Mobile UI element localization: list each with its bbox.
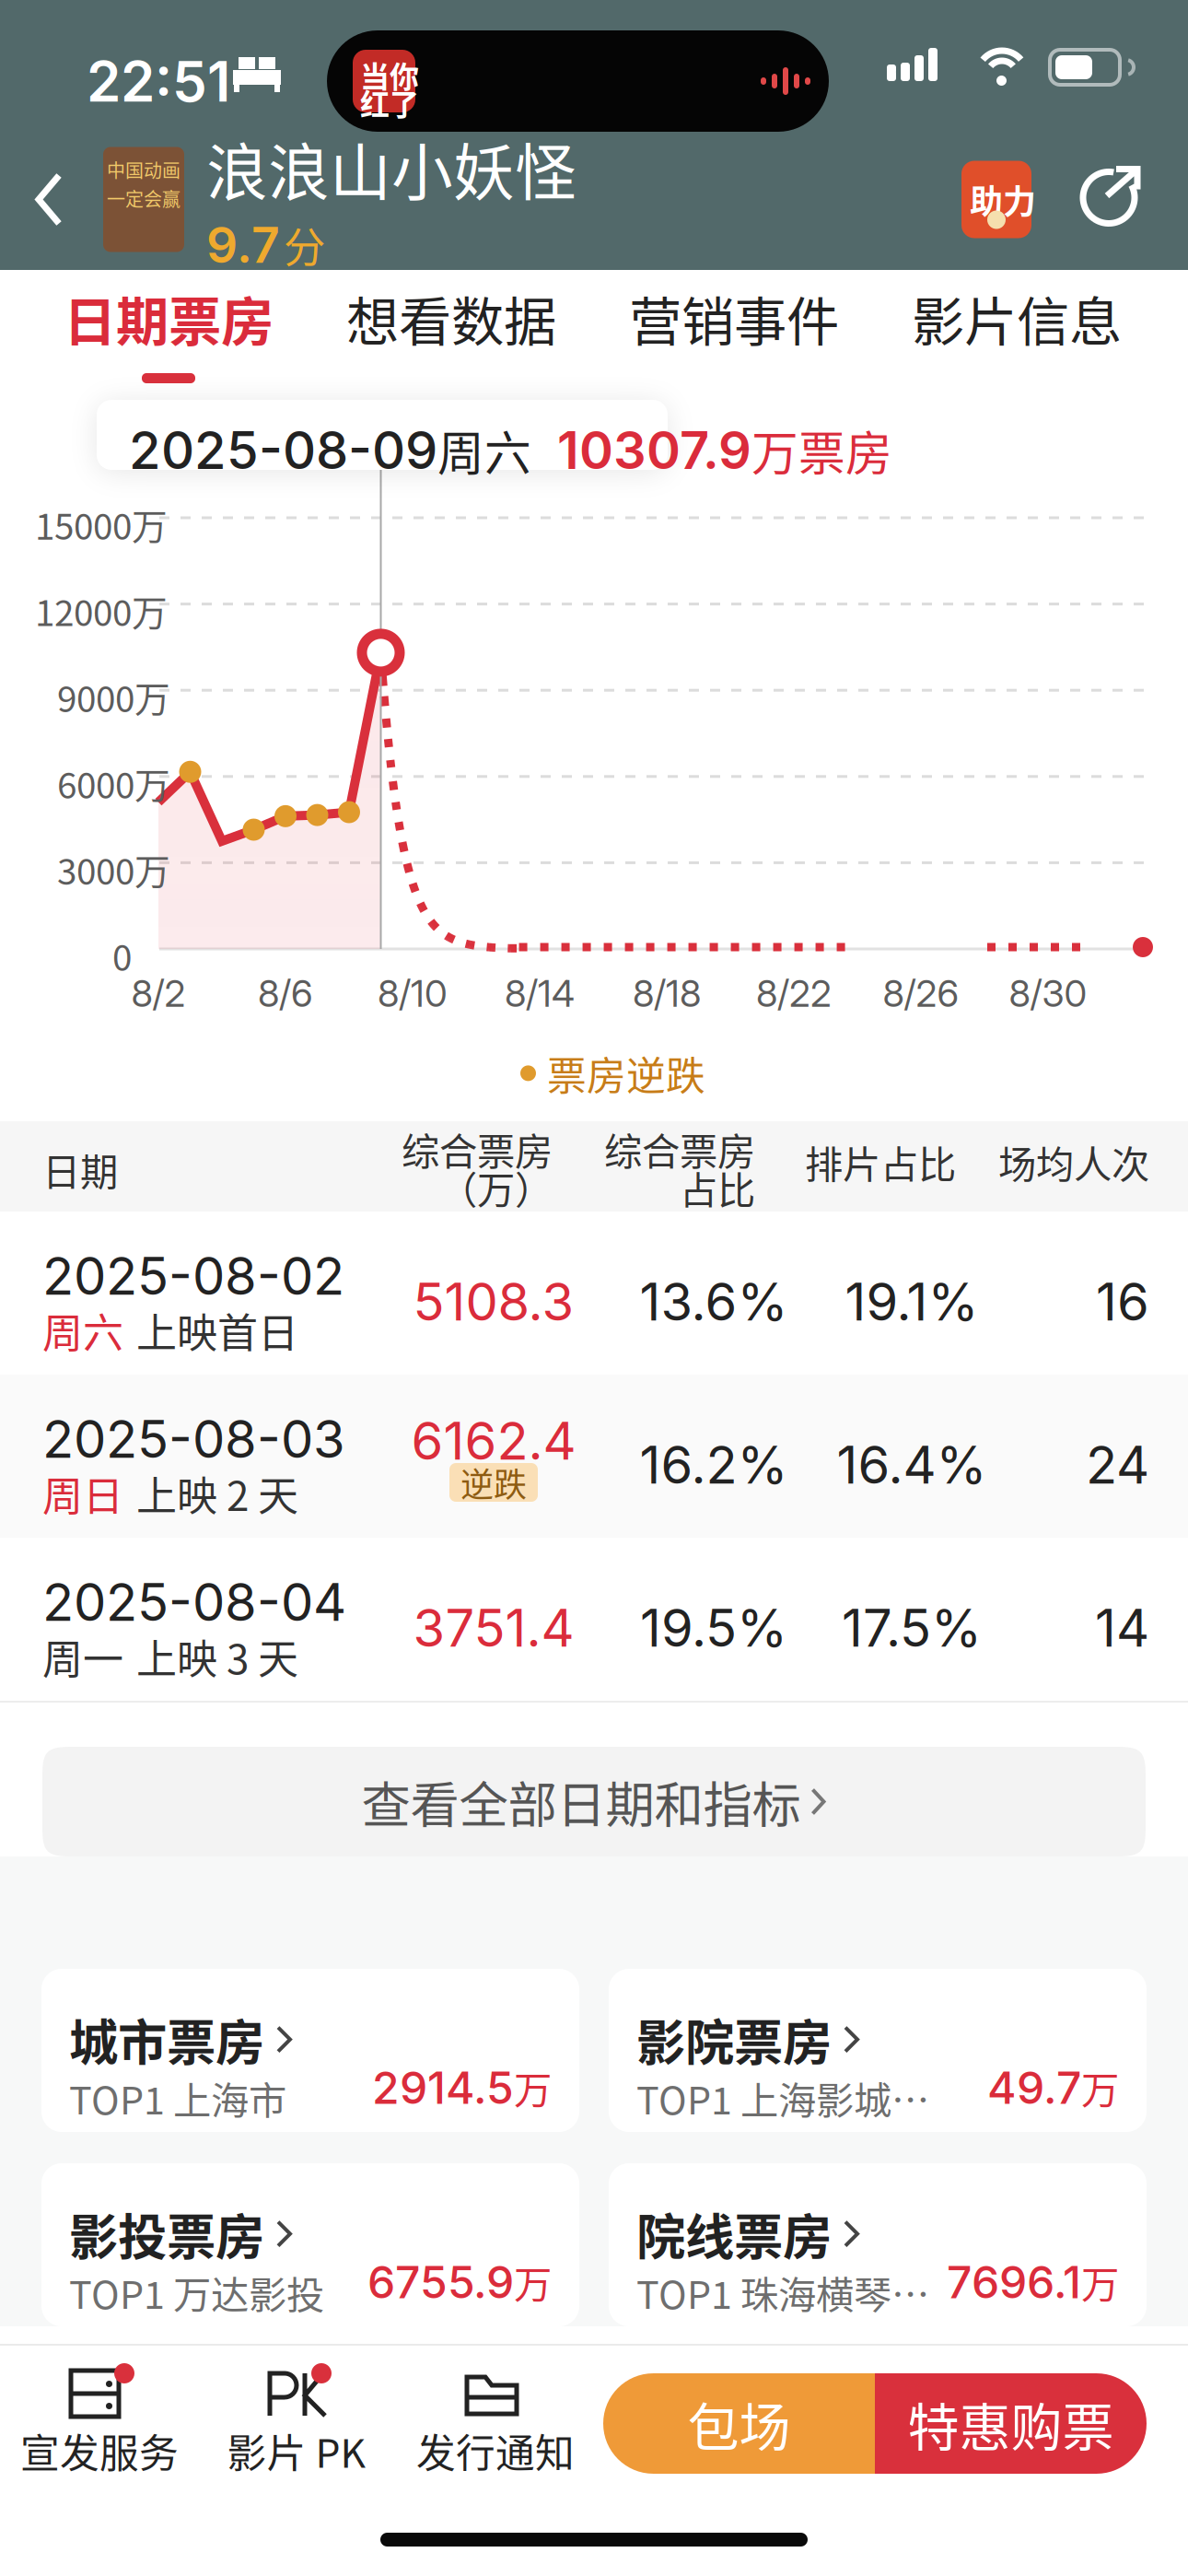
staticText: 票房逆跌	[547, 1045, 705, 1102]
staticText: 万	[1081, 2060, 1119, 2115]
button[interactable]: Share	[1031, 166, 1188, 233]
button[interactable]: 营销事件	[600, 270, 868, 392]
staticText: 上映首日	[136, 1301, 298, 1360]
staticText: 0	[112, 930, 132, 981]
staticText: 分	[284, 215, 325, 275]
staticText: 特惠购票	[908, 2386, 1114, 2461]
staticText: 9000万	[57, 671, 170, 722]
staticText: 包场	[687, 2386, 791, 2461]
button[interactable]: 想看数据	[318, 270, 585, 392]
button[interactable]: 影片 PK	[204, 2344, 389, 2491]
staticText: 10307.9	[531, 419, 751, 481]
staticText: 2025-08-02	[42, 1245, 344, 1307]
staticText: 周六	[437, 416, 531, 484]
staticText: 3000万	[57, 843, 170, 895]
staticText: TOP1 珠海横琴万达电…	[636, 2265, 959, 2320]
staticText: 日期	[42, 1142, 118, 1197]
staticText: 16	[1096, 1270, 1149, 1333]
staticText: TOP1 上海影城（SHO）	[636, 2070, 959, 2125]
button[interactable]: 日期票房	[35, 270, 302, 392]
staticText: 发行通知	[416, 2422, 575, 2479]
staticText: 19.1%	[845, 1270, 978, 1333]
staticText: 排片占比	[805, 1134, 956, 1189]
button[interactable]: 助力	[961, 161, 1031, 238]
staticText: 影投票房	[69, 2198, 264, 2269]
staticText: 9.7	[206, 215, 280, 275]
staticText: 院线票房	[636, 2198, 832, 2269]
staticText: 16.2%	[640, 1434, 788, 1496]
staticText: 上映 3 天	[136, 1627, 298, 1686]
staticText: 影院票房	[636, 2004, 832, 2075]
button[interactable]: 2025-08-02	[0, 1212, 1188, 1375]
staticText: 8/30	[1009, 971, 1087, 1016]
staticText: 营销事件	[629, 280, 839, 356]
staticText: 2025-08-09	[129, 419, 437, 481]
button[interactable]: 特惠购票	[875, 2373, 1147, 2474]
button[interactable]: 2025-08-04	[0, 1538, 1188, 1701]
button[interactable]: 影投票房	[41, 2163, 579, 2326]
staticText: 万	[514, 2255, 552, 2310]
staticText: 2025-08-04	[42, 1571, 346, 1633]
button[interactable]: 城市票房	[41, 1969, 579, 2132]
staticText: 8/2	[131, 971, 186, 1016]
button[interactable]: 宣发服务	[7, 2344, 192, 2491]
staticText: TOP1 万达影投	[69, 2265, 324, 2320]
button[interactable]: Back	[0, 170, 103, 229]
staticText: 影片 PK	[227, 2422, 366, 2479]
staticText: 8/14	[505, 971, 575, 1016]
staticText: 6755.9	[367, 2255, 514, 2309]
staticText: 12000万	[35, 585, 168, 636]
button[interactable]: 影片信息	[883, 270, 1150, 392]
staticText: 万	[1081, 2255, 1119, 2310]
staticText: 中国动画	[107, 156, 181, 183]
button[interactable]: 院线票房	[609, 2163, 1147, 2326]
staticText: 周日	[42, 1464, 123, 1523]
staticText: 22:51	[87, 48, 230, 115]
staticText: 8/6	[258, 971, 313, 1016]
staticText: 6162.4	[411, 1410, 576, 1472]
staticText: 17.5%	[842, 1597, 982, 1659]
staticText: 6000万	[57, 757, 170, 809]
button[interactable]: 影院票房	[609, 1969, 1147, 2132]
staticText: 5108.3	[413, 1270, 574, 1333]
staticText: 周六	[42, 1301, 123, 1360]
staticText: 日期票房	[64, 280, 274, 356]
staticText: 当你	[360, 53, 419, 96]
staticText: 红了	[360, 81, 419, 124]
staticText: 2914.5	[372, 2061, 514, 2115]
staticText: 占比	[680, 1160, 755, 1215]
staticText: 万票房	[751, 416, 892, 484]
staticText: 想看数据	[346, 280, 556, 356]
staticText: 7696.1	[947, 2255, 1081, 2309]
button[interactable]: 2025-08-03	[0, 1375, 1188, 1538]
staticText: 15000万	[35, 498, 168, 550]
staticText: 8/10	[378, 971, 448, 1016]
staticText: 8/22	[756, 971, 832, 1016]
staticText: 场均人次	[998, 1134, 1149, 1189]
staticText: 助力	[970, 176, 1036, 224]
staticText: 19.5%	[640, 1597, 787, 1659]
staticText: 宣发服务	[20, 2422, 179, 2479]
staticText: 综合票房	[604, 1121, 755, 1177]
staticText: 万	[514, 2060, 552, 2115]
staticText: 影片信息	[912, 280, 1122, 356]
staticText: 16.4%	[837, 1434, 987, 1496]
staticText: 3751.4	[413, 1597, 574, 1659]
staticText: TOP1 上海市	[69, 2070, 286, 2125]
staticText: 综合票房	[402, 1121, 553, 1177]
staticText: 上映 2 天	[136, 1464, 298, 1523]
button[interactable]: 包场	[603, 2373, 875, 2474]
staticText: 一定会赢	[107, 185, 181, 211]
staticText: 查看全部日期和指标	[361, 1766, 801, 1837]
staticText: 8/18	[633, 971, 701, 1016]
button[interactable]: 发行通知	[403, 2344, 588, 2491]
staticText: 24	[1086, 1434, 1149, 1496]
staticText: 13.6%	[640, 1270, 788, 1333]
staticText: （万）	[439, 1160, 553, 1215]
staticText: 城市票房	[69, 2004, 264, 2075]
button[interactable]: 查看全部日期和指标	[42, 1747, 1146, 1856]
staticText: 49.7	[987, 2061, 1081, 2115]
staticText: 周一	[42, 1627, 123, 1686]
staticText: 浪浪山小妖怪	[206, 124, 577, 213]
staticText: 14	[1095, 1597, 1149, 1659]
